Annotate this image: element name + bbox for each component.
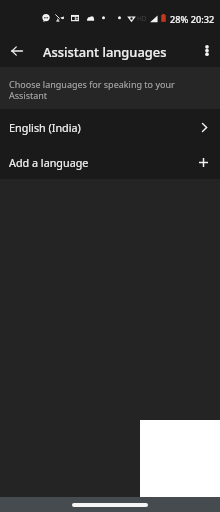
button[interactable]: Back [3, 37, 31, 65]
staticText: HD [137, 14, 147, 23]
button[interactable]: English (India) [0, 109, 220, 146]
button[interactable]: Add a language [0, 146, 220, 179]
staticText: Assistant languages [43, 43, 167, 61]
button[interactable]: More options [193, 37, 220, 64]
staticText: 28% 20:32 [170, 13, 215, 26]
staticText: English (India) [9, 120, 81, 135]
staticText: Add a language [9, 155, 89, 170]
staticText: Choose languages for speaking to your As… [9, 78, 185, 102]
